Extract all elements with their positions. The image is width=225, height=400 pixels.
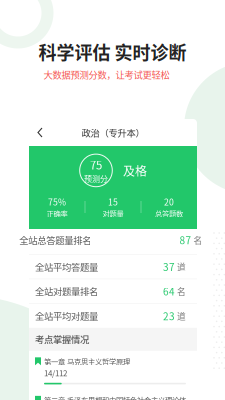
staticText: 名 (191, 234, 202, 246)
staticText: 64 (163, 284, 175, 298)
button[interactable]: 返回 (33, 125, 47, 139)
staticText: 第一章 马克思主义哲学原理 (44, 356, 130, 367)
staticText: 政治（专升本） (81, 126, 144, 139)
staticText: 20 (164, 195, 174, 208)
staticText: 道 (175, 309, 186, 322)
staticText: 全站总答题量排名 (19, 233, 91, 247)
staticText: 15 (108, 195, 118, 208)
staticText: 总答题数 (155, 208, 183, 219)
staticText: 第二章 毛泽东思想和中国特色社会主义理论体… (44, 395, 193, 400)
button[interactable]: 第二章 毛泽东思想和中国特色社会主义理论体… (29, 389, 197, 400)
staticText: 全站对题量排名 (35, 284, 98, 298)
staticText: 75% (48, 195, 66, 208)
staticText: 37 (163, 259, 175, 274)
staticText: 考点掌握情况 (35, 332, 89, 346)
staticText: 大数据预测分数，让考试更轻松 (43, 68, 169, 81)
staticText: 75 (90, 156, 102, 173)
staticText: 全站平均对题量 (35, 309, 98, 322)
staticText: 科学评估 实时诊断 (38, 39, 186, 65)
staticText: 87 (179, 233, 191, 247)
staticText: 对题量 (102, 208, 123, 219)
staticText: 道 (175, 260, 186, 273)
staticText: 14/112 (44, 367, 67, 379)
staticText: 预测分 (84, 173, 108, 184)
button[interactable]: 全站总答题量排名 (13, 228, 211, 252)
staticText: 正确率 (46, 208, 67, 219)
staticText: 名 (175, 285, 186, 297)
staticText: 及格 (123, 162, 147, 179)
staticText: 全站平均答题量 (35, 260, 98, 273)
button[interactable]: 全站对题量排名 (29, 279, 197, 303)
button[interactable]: 全站平均答题量 (29, 255, 197, 279)
button[interactable]: 全站平均对题量 (29, 304, 197, 328)
button[interactable]: 第一章 马克思主义哲学原理 (29, 351, 197, 389)
staticText: 23 (163, 309, 175, 323)
